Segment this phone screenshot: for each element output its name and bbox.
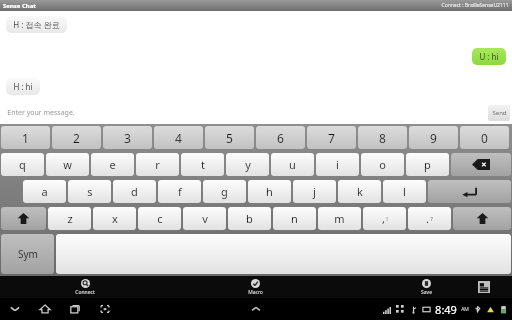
button[interactable]: Screenshot bbox=[98, 302, 112, 316]
staticText: i bbox=[336, 157, 339, 172]
staticText: 8 bbox=[379, 130, 386, 146]
button[interactable]: r bbox=[136, 153, 179, 176]
button[interactable]: Send bbox=[488, 105, 510, 121]
button[interactable]: e bbox=[91, 153, 134, 176]
button[interactable]: Enter your message. bbox=[2, 104, 486, 122]
button[interactable]: n bbox=[273, 207, 316, 230]
button[interactable]: 0 bbox=[460, 126, 509, 149]
button[interactable]: Connect bbox=[0, 276, 170, 298]
staticText: b bbox=[246, 211, 253, 226]
staticText: Connect bbox=[75, 289, 95, 296]
button[interactable]: 8 bbox=[358, 126, 407, 149]
button[interactable]: Backspace bbox=[451, 153, 511, 176]
button[interactable]: h bbox=[248, 180, 291, 203]
button[interactable]: 7 bbox=[307, 126, 356, 149]
staticText: f bbox=[178, 184, 182, 199]
button[interactable]: o bbox=[361, 153, 404, 176]
button[interactable]: 4 bbox=[154, 126, 203, 149]
staticText: 6 bbox=[277, 130, 284, 146]
staticText: s bbox=[87, 184, 93, 199]
staticText: 8:49 bbox=[435, 302, 457, 317]
button[interactable]: p bbox=[406, 153, 449, 176]
button[interactable]: u bbox=[271, 153, 314, 176]
staticText: 0 bbox=[481, 130, 488, 146]
button[interactable]: b bbox=[228, 207, 271, 230]
button[interactable]: H : hi bbox=[13, 81, 33, 92]
button[interactable]: Hide keyboard bbox=[8, 302, 22, 316]
button[interactable]: 2 bbox=[52, 126, 101, 149]
button[interactable]: f bbox=[158, 180, 201, 203]
staticText: p bbox=[424, 157, 431, 172]
staticText: g bbox=[221, 184, 228, 199]
button[interactable]: U : hi bbox=[479, 51, 499, 62]
button[interactable]: , bbox=[363, 207, 406, 230]
staticText: h bbox=[266, 184, 273, 199]
staticText: AM bbox=[461, 306, 469, 313]
button[interactable]: z bbox=[48, 207, 91, 230]
staticText: 7 bbox=[328, 130, 335, 146]
staticText: ! bbox=[386, 215, 388, 223]
staticText: 1 bbox=[22, 130, 29, 146]
staticText: Sense Chat bbox=[3, 2, 36, 10]
button[interactable]: m bbox=[318, 207, 361, 230]
staticText: Connect : BrailleSenseU2111 bbox=[441, 2, 509, 9]
staticText: Save bbox=[421, 289, 432, 296]
button[interactable]: Save bbox=[341, 276, 512, 298]
button[interactable]: l bbox=[383, 180, 426, 203]
button[interactable]: a bbox=[23, 180, 66, 203]
button[interactable]: k bbox=[338, 180, 381, 203]
button[interactable]: y bbox=[226, 153, 269, 176]
button[interactable]: Shift bbox=[1, 207, 46, 230]
staticText: 9 bbox=[430, 130, 437, 146]
staticText: l bbox=[403, 184, 406, 199]
button[interactable]: i bbox=[316, 153, 359, 176]
staticText: H : hi bbox=[13, 81, 33, 92]
button[interactable]: d bbox=[113, 180, 156, 203]
button[interactable]: 3 bbox=[103, 126, 152, 149]
button[interactable]: w bbox=[46, 153, 89, 176]
staticText: U : hi bbox=[479, 51, 499, 62]
button[interactable]: . bbox=[408, 207, 451, 230]
button[interactable]: Macro bbox=[170, 276, 341, 298]
staticText: z bbox=[67, 211, 73, 226]
button[interactable]: j bbox=[293, 180, 336, 203]
staticText: ? bbox=[430, 215, 433, 223]
button[interactable]: Expand bbox=[249, 302, 263, 316]
button[interactable]: 6 bbox=[256, 126, 305, 149]
button[interactable]: t bbox=[181, 153, 224, 176]
staticText: Send bbox=[492, 109, 507, 117]
button[interactable]: g bbox=[203, 180, 246, 203]
staticText: , bbox=[382, 211, 385, 226]
staticText: Macro bbox=[248, 289, 263, 296]
button[interactable]: Recent apps bbox=[68, 302, 82, 316]
staticText: q bbox=[19, 157, 26, 172]
button[interactable]: c bbox=[138, 207, 181, 230]
staticText: w bbox=[63, 157, 72, 172]
button[interactable]: Sym bbox=[1, 234, 54, 274]
button[interactable]: H : 접속 완료 bbox=[13, 19, 60, 30]
button[interactable]: Switch keyboard bbox=[478, 281, 490, 293]
staticText: x bbox=[112, 211, 118, 226]
button[interactable] bbox=[56, 234, 511, 274]
button[interactable]: 1 bbox=[1, 126, 50, 149]
button[interactable]: Enter bbox=[428, 180, 511, 203]
staticText: c bbox=[157, 211, 163, 226]
button[interactable]: Shift bbox=[453, 207, 511, 230]
staticText: m bbox=[334, 211, 345, 226]
staticText: Enter your message. bbox=[7, 108, 75, 118]
button[interactable]: q bbox=[1, 153, 44, 176]
staticText: a bbox=[41, 184, 48, 199]
staticText: r bbox=[155, 157, 160, 172]
button[interactable]: v bbox=[183, 207, 226, 230]
staticText: u bbox=[289, 157, 296, 172]
staticText: j bbox=[313, 184, 316, 199]
staticText: . bbox=[426, 211, 429, 226]
button[interactable]: 5 bbox=[205, 126, 254, 149]
button[interactable]: 9 bbox=[409, 126, 458, 149]
staticText: 5 bbox=[226, 130, 233, 146]
button[interactable]: x bbox=[93, 207, 136, 230]
staticText: o bbox=[379, 157, 386, 172]
button[interactable]: s bbox=[68, 180, 111, 203]
button[interactable]: Home bbox=[38, 302, 52, 316]
staticText: 3 bbox=[124, 130, 131, 146]
